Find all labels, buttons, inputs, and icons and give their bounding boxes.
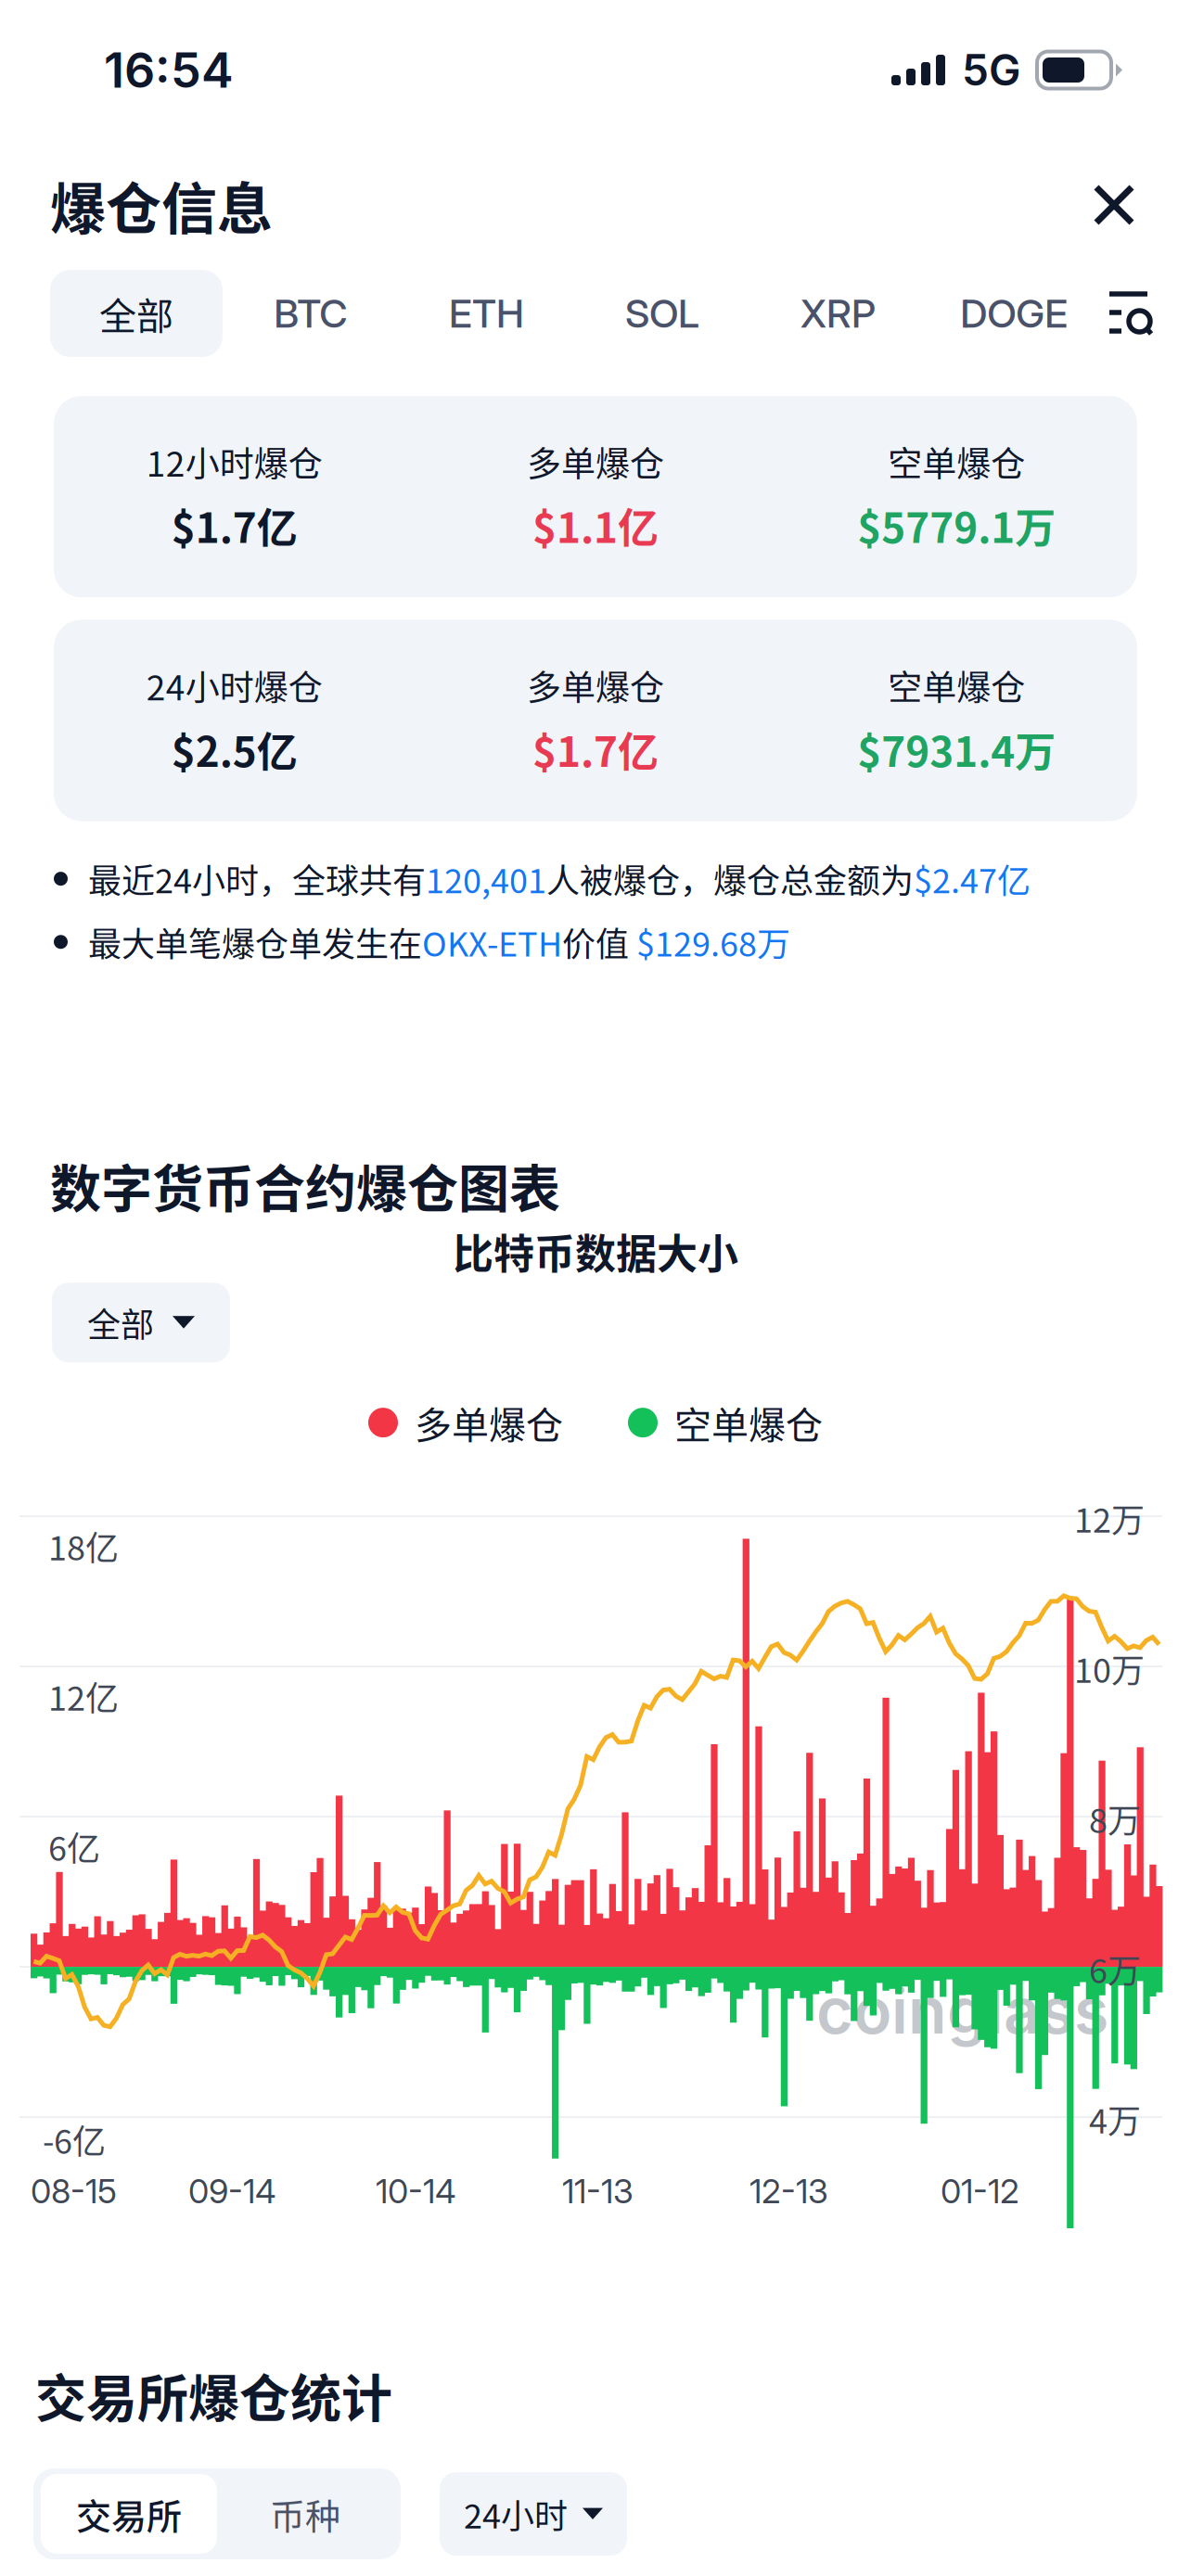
staticText: 01-12	[941, 2171, 1019, 2211]
button[interactable]: DOGE	[926, 270, 1102, 357]
button[interactable]: 24小时	[440, 2472, 627, 2556]
staticText: $129.68万	[636, 918, 790, 966]
staticText: 12小时爆仓	[146, 437, 323, 486]
staticText: ETH	[449, 290, 524, 337]
staticText: 空单爆仓	[888, 661, 1025, 710]
staticText: 6万	[1089, 1945, 1141, 1993]
staticText: $2.47亿	[914, 855, 1031, 903]
button[interactable]: BTC	[223, 270, 398, 357]
staticText: 数字货币合约爆仓图表	[50, 1148, 560, 1222]
staticText: 24小时	[464, 2490, 568, 2538]
staticText: 爆仓信息	[50, 165, 273, 245]
staticText: $2.5亿	[171, 719, 297, 779]
staticText: 24小时爆仓	[146, 661, 323, 710]
staticText: $5779.1万	[857, 496, 1056, 555]
staticText: 价值	[562, 918, 636, 966]
staticText: 10-14	[376, 2171, 456, 2211]
staticText: 多单爆仓	[415, 1396, 563, 1449]
button[interactable]: 币种	[217, 2474, 393, 2554]
staticText: 空单爆仓	[674, 1396, 823, 1449]
staticText: 12亿	[48, 1672, 119, 1720]
staticText: $1.1亿	[532, 496, 659, 555]
staticText: 多单爆仓	[527, 661, 664, 710]
staticText: 4万	[1089, 2095, 1141, 2143]
staticText: 人被爆仓，爆仓总金额为	[546, 855, 914, 903]
staticText: 8万	[1089, 1794, 1141, 1843]
staticText: XRP	[801, 290, 876, 337]
staticText: 最大单笔爆仓单发生在	[88, 918, 422, 966]
button[interactable]: SOL	[574, 270, 750, 357]
staticText: 币种	[270, 2488, 340, 2539]
staticText: 5G	[962, 44, 1020, 96]
button[interactable]: 全部	[52, 1283, 230, 1362]
button[interactable]: ETH	[398, 270, 574, 357]
staticText: 全部	[99, 287, 173, 340]
staticText: 6亿	[48, 1822, 100, 1871]
staticText: 12万	[1074, 1494, 1145, 1542]
staticText: 09-14	[188, 2171, 276, 2211]
staticText: $1.7亿	[532, 719, 659, 779]
button[interactable]: 全部	[50, 270, 223, 357]
button[interactable]: Close	[1082, 172, 1146, 237]
staticText: 120,401	[426, 855, 546, 903]
staticText: 交易所	[76, 2488, 182, 2539]
staticText: SOL	[625, 290, 699, 337]
staticText: 最近24小时，全球共有	[88, 855, 426, 903]
staticText: 18亿	[48, 1522, 119, 1570]
staticText: 10万	[1074, 1644, 1145, 1692]
staticText: 交易所爆仓统计	[35, 2358, 392, 2431]
button[interactable]: 交易所	[41, 2474, 217, 2554]
staticText: $1.7亿	[171, 496, 297, 555]
button[interactable]: XRP	[750, 270, 926, 357]
staticText: $7931.4万	[857, 719, 1056, 779]
staticText: 08-15	[31, 2171, 117, 2211]
staticText: 多单爆仓	[527, 437, 664, 486]
staticText: 空单爆仓	[888, 437, 1025, 486]
staticText: 比特币数据大小	[453, 1222, 738, 1281]
staticText: OKX-ETH	[422, 918, 562, 966]
staticText: -6亿	[43, 2115, 106, 2164]
staticText: coinglass	[816, 1972, 1108, 2049]
staticText: BTC	[274, 290, 347, 337]
staticText: DOGE	[960, 290, 1068, 337]
button[interactable]: Search and filter	[1102, 270, 1159, 357]
staticText: 16:54	[104, 41, 234, 99]
staticText: 12-13	[749, 2171, 828, 2211]
staticText: 全部	[87, 1298, 154, 1347]
staticText: 11-13	[562, 2171, 634, 2211]
